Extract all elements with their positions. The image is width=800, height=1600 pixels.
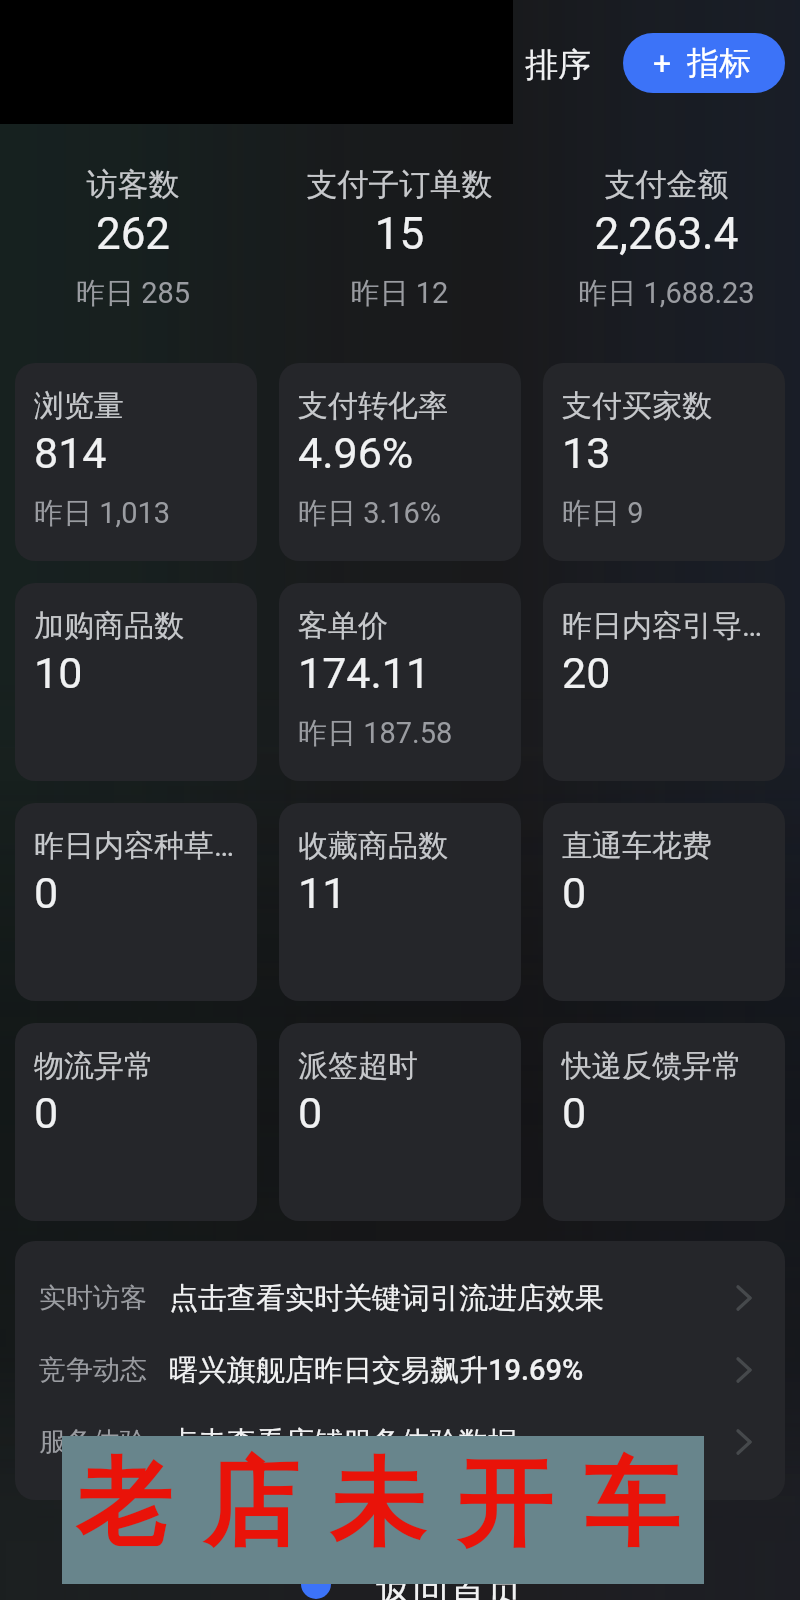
staticText: 快递反馈异常 xyxy=(562,1047,742,1085)
button[interactable]: 访客数 xyxy=(0,141,266,317)
button[interactable]: 实时访客 xyxy=(15,1262,785,1334)
staticText: 支付买家数 xyxy=(562,387,712,425)
staticText: 昨日 12 xyxy=(266,275,533,312)
staticText: 实时访客 xyxy=(39,1281,147,1315)
staticText: 昨日 1,688.23 xyxy=(533,275,800,312)
button[interactable]: 加购商品数 xyxy=(15,583,257,781)
button[interactable]: 收藏商品数 xyxy=(279,803,521,1001)
staticText: 加购商品数 xyxy=(34,607,184,645)
staticText: 昨日 9 xyxy=(562,495,644,532)
staticText: 0 xyxy=(34,1088,59,1138)
button[interactable]: 物流异常 xyxy=(15,1023,257,1221)
button[interactable]: 快递反馈异常 xyxy=(543,1023,785,1221)
button[interactable]: 昨日内容引导… xyxy=(543,583,785,781)
staticText: 物流异常 xyxy=(34,1047,154,1085)
staticText: 4.96% xyxy=(298,428,414,478)
button[interactable]: 竞争动态 xyxy=(15,1334,785,1406)
staticText: 老店未开车 xyxy=(60,1445,695,1565)
button[interactable]: 直通车花费 xyxy=(543,803,785,1001)
staticText: 20 xyxy=(562,648,611,698)
staticText: 收藏商品数 xyxy=(298,827,448,865)
button[interactable]: 浏览量 xyxy=(15,363,257,561)
staticText: 竞争动态 xyxy=(39,1353,147,1387)
staticText: 支付子订单数 xyxy=(266,165,533,204)
staticText: 10 xyxy=(34,648,83,698)
staticText: 262 xyxy=(0,208,266,260)
button[interactable]: 昨日内容种草… xyxy=(15,803,257,1001)
staticText: 指标 xyxy=(687,43,751,83)
staticText: 昨日 1,013 xyxy=(34,495,171,532)
staticText: 昨日 285 xyxy=(0,275,266,312)
staticText: 15 xyxy=(266,208,533,260)
staticText: 点击查看店铺服务体验数据 xyxy=(169,1424,736,1461)
staticText: 昨日 3.16% xyxy=(298,495,441,532)
staticText: 814 xyxy=(34,428,107,478)
staticText: 0 xyxy=(298,1088,323,1138)
staticText: 0 xyxy=(562,1088,587,1138)
button[interactable]: 服务体验 xyxy=(15,1406,785,1478)
staticText: 支付转化率 xyxy=(298,387,448,425)
staticText: 支付金额 xyxy=(533,165,800,204)
staticText: + xyxy=(653,44,672,82)
staticText: 排序 xyxy=(525,44,591,86)
staticText: 昨日内容种草… xyxy=(34,827,235,865)
staticText: 服务体验 xyxy=(39,1425,147,1459)
staticText: 2,263.4 xyxy=(533,208,800,260)
button[interactable]: 派签超时 xyxy=(279,1023,521,1221)
staticText: 浏览量 xyxy=(34,387,124,425)
staticText: 昨日 187.58 xyxy=(298,715,453,752)
staticText: 访客数 xyxy=(0,165,266,204)
staticText: 派签超时 xyxy=(298,1047,418,1085)
staticText: 0 xyxy=(34,868,59,918)
staticText: 昨日内容引导… xyxy=(562,607,763,645)
staticText: 返回首页 xyxy=(375,1568,523,1600)
staticText: 点击查看实时关键词引流进店效果 xyxy=(169,1280,736,1317)
staticText: 直通车花费 xyxy=(562,827,712,865)
staticText: 0 xyxy=(562,868,587,918)
button[interactable]: 支付买家数 xyxy=(543,363,785,561)
button[interactable]: + xyxy=(623,33,785,93)
button[interactable]: 排序 xyxy=(511,32,605,94)
staticText: 174.11 xyxy=(298,648,431,698)
button[interactable]: 客单价 xyxy=(279,583,521,781)
button[interactable]: 支付金额 xyxy=(533,141,800,317)
staticText: 13 xyxy=(562,428,611,478)
button[interactable]: 支付子订单数 xyxy=(266,141,533,317)
button[interactable]: 支付转化率 xyxy=(279,363,521,561)
button[interactable]: 返回首页 xyxy=(289,1568,535,1600)
staticText: 客单价 xyxy=(298,607,388,645)
staticText: 11 xyxy=(298,868,347,918)
staticText: 曙兴旗舰店昨日交易飙升19.69% xyxy=(169,1352,736,1389)
